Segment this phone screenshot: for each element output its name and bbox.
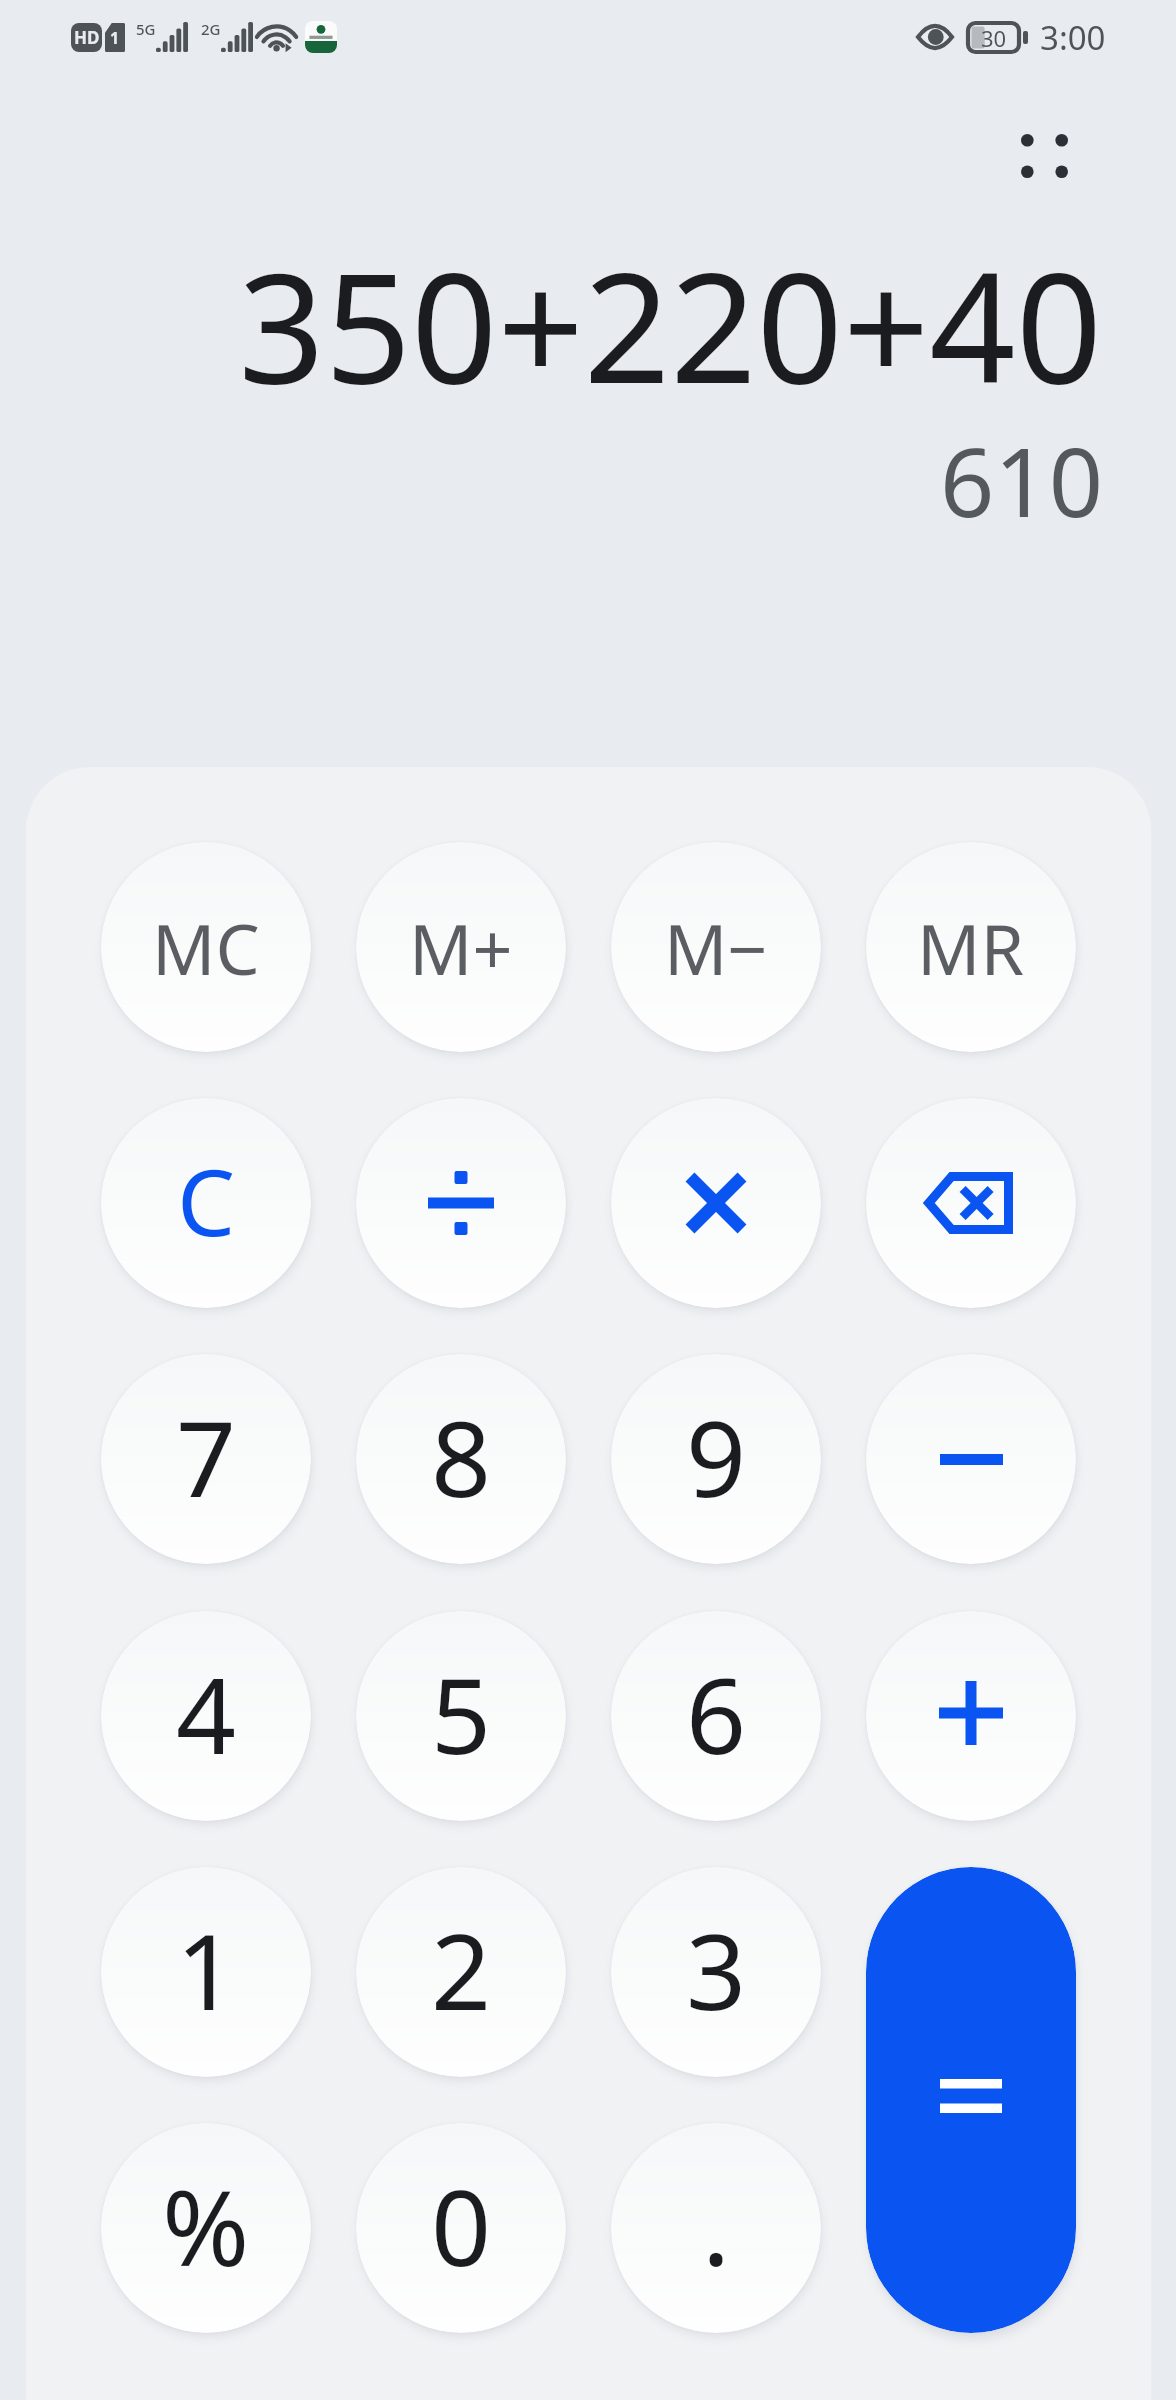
staticText: 1 (110, 27, 120, 49)
staticText: 30 (981, 23, 1007, 52)
staticText: 6 (686, 1642, 747, 1785)
staticText: 3:00 (1040, 15, 1106, 60)
button[interactable]: M+ (356, 842, 566, 1052)
staticText: HD (74, 26, 100, 49)
button[interactable]: MR (866, 842, 1076, 1052)
staticText: 2G (201, 19, 221, 39)
button[interactable]: . (611, 2123, 821, 2333)
button[interactable]: Multiply (611, 1098, 821, 1308)
staticText: MC (152, 900, 260, 995)
button[interactable]: Backspace (866, 1098, 1076, 1308)
staticText: 7 (176, 1385, 237, 1528)
staticText: 0 (431, 2154, 492, 2297)
button[interactable]: Subtract (866, 1354, 1076, 1564)
staticText: M+ (409, 900, 513, 995)
staticText: 4 (176, 1642, 237, 1785)
button[interactable]: 7 (101, 1354, 311, 1564)
button[interactable]: Equals (866, 1867, 1076, 2333)
staticText: 3 (686, 1898, 747, 2041)
button[interactable]: 5 (356, 1611, 566, 1821)
button[interactable]: MC (101, 842, 311, 1052)
staticText: 610 (939, 415, 1103, 544)
staticText: 1 (176, 1898, 237, 2041)
staticText: MR (917, 900, 1025, 995)
button[interactable]: M− (611, 842, 821, 1052)
button[interactable]: 9 (611, 1354, 821, 1564)
button[interactable]: C (101, 1098, 311, 1308)
staticText: M− (664, 900, 768, 995)
staticText: 8 (431, 1385, 492, 1528)
staticText: 9 (686, 1385, 747, 1528)
staticText: C (177, 1138, 236, 1263)
staticText: . (702, 2154, 731, 2297)
button[interactable]: 4 (101, 1611, 311, 1821)
button[interactable]: 2 (356, 1867, 566, 2077)
staticText: 5G (136, 19, 156, 39)
button[interactable]: % (101, 2123, 311, 2333)
button[interactable]: 6 (611, 1611, 821, 1821)
staticText: 2 (431, 1898, 492, 2041)
button[interactable]: Add (866, 1611, 1076, 1821)
staticText: 350+220+40 (238, 222, 1102, 428)
button[interactable]: Divide (356, 1098, 566, 1308)
button[interactable]: 1 (101, 1867, 311, 2077)
button[interactable]: 8 (356, 1354, 566, 1564)
button[interactable]: More options (992, 104, 1096, 208)
button[interactable]: 0 (356, 2123, 566, 2333)
staticText: % (162, 2154, 250, 2297)
staticText: 5 (431, 1642, 492, 1785)
button[interactable]: 3 (611, 1867, 821, 2077)
